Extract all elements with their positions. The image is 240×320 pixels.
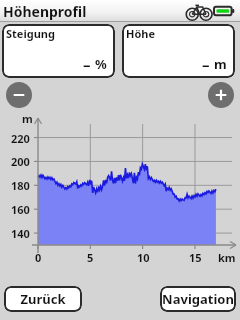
staticText: – [202,54,210,74]
staticText: Navigation [162,290,234,308]
staticText: 140 [11,226,30,241]
staticText: – [83,54,91,74]
button[interactable]: Zoom in [208,82,234,108]
staticText: km [218,250,236,265]
staticText: 180 [11,178,30,193]
button[interactable]: Zoom out [6,82,32,108]
staticText: 10 [137,250,150,265]
button[interactable]: Steigung [2,24,115,78]
staticText: 160 [11,202,30,217]
staticText: m [22,111,33,126]
button[interactable]: Navigation [160,286,236,312]
staticText: Steigung [6,26,55,41]
button[interactable]: Zurück [4,286,82,312]
staticText: 220 [11,131,30,146]
staticText: 0 [35,250,42,265]
staticText: Höhenprofil [3,2,87,21]
other: Battery [214,4,236,18]
button[interactable]: Höhe [122,24,235,78]
staticText: 200 [11,154,30,169]
other: Bicycle mode [186,1,212,21]
staticText: m [214,55,227,73]
staticText: % [95,55,107,73]
staticText: 15 [189,250,202,265]
staticText: 5 [87,250,94,265]
staticText: Zurück [20,290,66,308]
staticText: Höhe [126,26,156,41]
